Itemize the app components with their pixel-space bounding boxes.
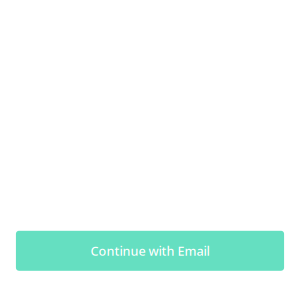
staticText: Continue with Email: [90, 242, 209, 259]
button[interactable]: Continue with Email: [16, 231, 284, 271]
